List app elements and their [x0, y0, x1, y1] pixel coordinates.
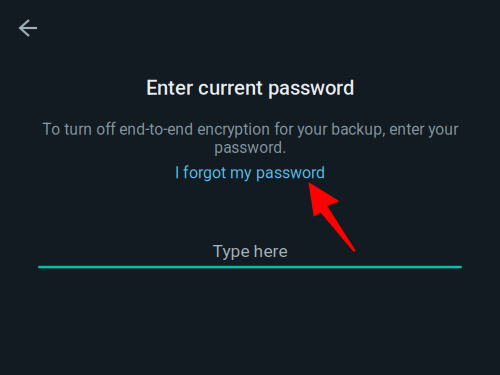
- button[interactable]: Type here: [0, 241, 500, 268]
- staticText: I forgot my password: [175, 163, 325, 182]
- button[interactable]: I forgot my password: [175, 163, 325, 182]
- staticText: Type here: [212, 241, 287, 261]
- staticText: To turn off end-to-end encryption for yo…: [42, 120, 458, 157]
- button[interactable]: Back: [8, 8, 48, 48]
- staticText: Enter current password: [146, 76, 354, 100]
